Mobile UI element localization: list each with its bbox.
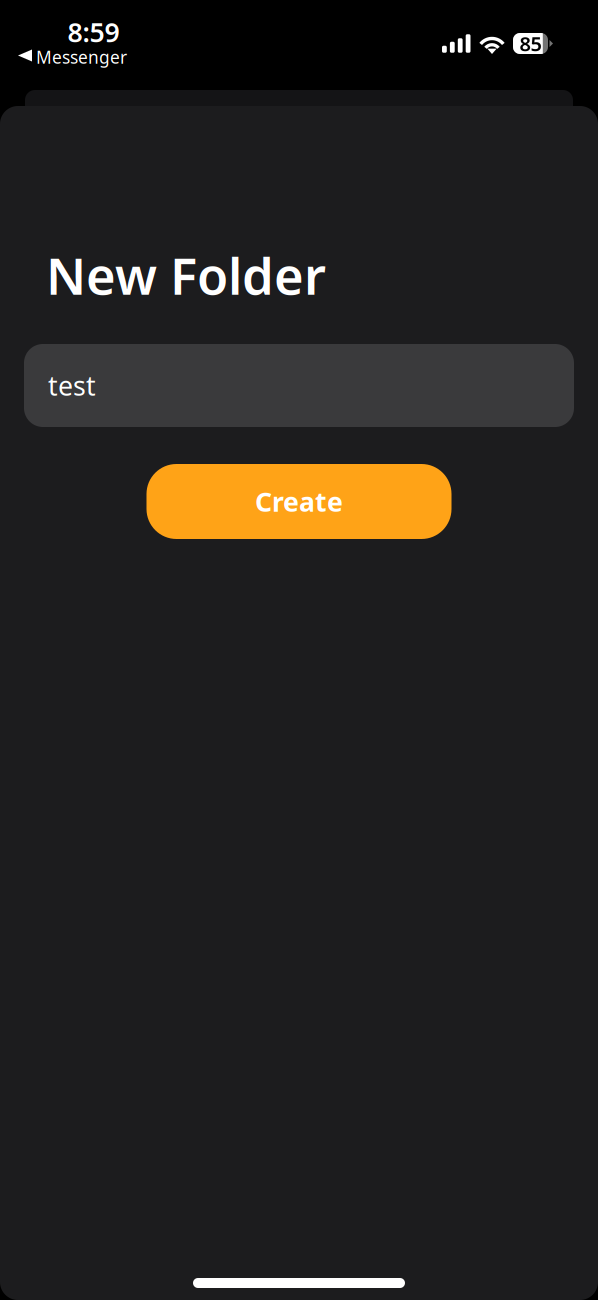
button[interactable]: Create (146, 464, 451, 539)
staticText: New Folder (46, 241, 326, 309)
staticText: 8:59 (67, 14, 119, 50)
staticText: test (48, 368, 96, 403)
staticText: 85 (519, 30, 541, 57)
staticText: Create (255, 484, 343, 519)
button[interactable]: Messenger (18, 48, 127, 66)
button[interactable]: test (24, 344, 574, 427)
staticText: Messenger (36, 45, 127, 68)
